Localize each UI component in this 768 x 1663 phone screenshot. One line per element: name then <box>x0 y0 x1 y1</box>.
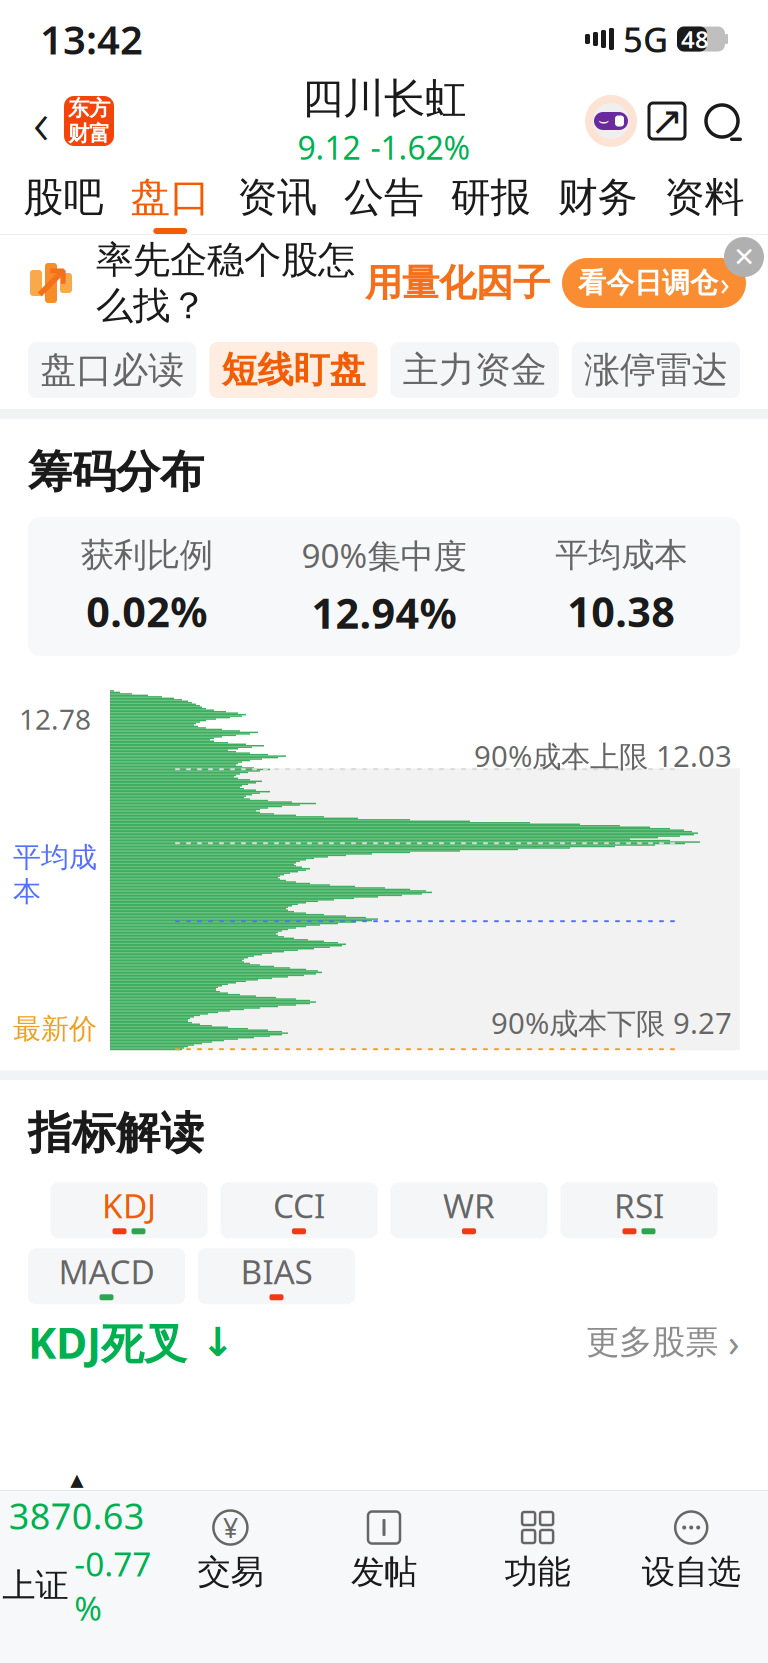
staticText: 获利比例 <box>81 535 213 576</box>
staticText: 更多股票 <box>586 1322 718 1363</box>
staticText: 交易 <box>197 1551 263 1592</box>
staticText: 12.78 <box>19 700 91 737</box>
staticText: CCI <box>273 1183 325 1227</box>
staticText: 10.38 <box>567 584 675 638</box>
staticText: -1.62% <box>370 126 470 169</box>
staticText: ↗ <box>31 256 71 310</box>
staticText: 用量化因子 <box>365 260 550 306</box>
button[interactable]: 资讯 <box>224 164 331 234</box>
staticText: 最新价 <box>13 1012 97 1046</box>
staticText: 研报 <box>451 173 531 222</box>
staticText: 股吧 <box>23 173 103 222</box>
staticText: 90%成本上限 12.03 <box>474 736 732 775</box>
staticText: 财务 <box>558 173 638 222</box>
staticText: ↗ <box>650 98 684 144</box>
button[interactable]: AI 助手 <box>582 92 640 150</box>
button[interactable]: BIAS <box>198 1248 355 1304</box>
staticText: 3870.63 <box>9 1492 145 1539</box>
staticText: 9.12 <box>297 126 360 169</box>
staticText: 指标解读 <box>28 1106 204 1160</box>
button[interactable]: 东方财富首页 <box>64 96 114 146</box>
staticText: 资料 <box>665 173 745 222</box>
staticText: 5G <box>614 16 677 62</box>
button[interactable]: KDJ <box>50 1182 207 1238</box>
staticText: 90%集中度 <box>301 533 466 577</box>
button[interactable]: 盘口 <box>117 164 224 234</box>
staticText: -0.77% <box>74 1541 151 1630</box>
staticText: ▲ <box>70 1470 83 1490</box>
staticText: RSI <box>614 1183 664 1227</box>
staticText: 90%成本下限 9.27 <box>491 1003 732 1042</box>
button[interactable]: ¥ <box>154 1507 307 1592</box>
staticText: 公告 <box>344 173 424 222</box>
staticText: 设自选 <box>642 1551 741 1592</box>
staticText: › <box>720 262 730 304</box>
button[interactable]: CCI <box>220 1182 377 1238</box>
button[interactable]: 股吧 <box>10 164 117 234</box>
button[interactable]: 搜索 <box>694 93 750 149</box>
staticText: WR <box>443 1183 495 1227</box>
button[interactable]: 短线盯盘 <box>209 342 377 398</box>
staticText: 发帖 <box>351 1551 417 1592</box>
staticText: ‹ <box>33 80 49 162</box>
staticText: 资讯 <box>237 173 317 222</box>
staticText: 0.02% <box>86 584 207 638</box>
button[interactable]: ▲ <box>0 1470 154 1630</box>
button[interactable]: 财务 <box>544 164 651 234</box>
staticText: KDJ <box>102 1183 156 1227</box>
staticText: ✕ <box>733 242 755 272</box>
staticText: 上证 <box>2 1565 68 1606</box>
button[interactable]: RSI <box>560 1182 717 1238</box>
button[interactable]: KDJ死叉 <box>0 1304 768 1380</box>
staticText: ↓ <box>187 1319 235 1365</box>
staticText: 筹码分布 <box>28 445 204 499</box>
button[interactable]: MACD <box>28 1248 185 1304</box>
staticText: ⌣ <box>598 112 609 129</box>
staticText: MACD <box>58 1249 154 1293</box>
staticText: KDJ死叉 <box>28 1314 187 1371</box>
staticText: 涨停雷达 <box>584 348 728 392</box>
staticText: 率先企稳个股怎么找？ <box>96 237 355 329</box>
button[interactable]: 主力资金 <box>390 342 559 398</box>
staticText: 12.94% <box>311 585 456 640</box>
button[interactable]: 公告 <box>331 164 437 234</box>
button[interactable]: 资料 <box>651 164 758 234</box>
button[interactable]: 看今日调仓 <box>562 258 746 308</box>
button[interactable]: 涨停雷达 <box>572 342 740 398</box>
staticText: 平均成本 <box>555 535 687 576</box>
staticText: 48 <box>681 23 709 55</box>
staticText: 13:42 <box>40 12 143 65</box>
button[interactable]: 功能 <box>461 1507 614 1592</box>
button[interactable]: 返回 <box>18 93 64 149</box>
button[interactable]: 设自选 <box>614 1507 768 1592</box>
button[interactable]: 分享 <box>640 94 694 148</box>
button[interactable]: 关闭广告 <box>722 235 766 279</box>
staticText: ¥ <box>223 1510 238 1545</box>
staticText: › <box>718 1317 740 1367</box>
staticText: 功能 <box>505 1551 571 1592</box>
button[interactable]: 研报 <box>437 164 544 234</box>
staticText: 盘口必读 <box>40 348 184 392</box>
staticText: 主力资金 <box>403 348 547 392</box>
button[interactable]: 发帖 <box>307 1507 461 1592</box>
staticText: 短线盯盘 <box>221 348 365 392</box>
staticText: 财富 <box>68 120 110 147</box>
staticText: 平均成本 <box>13 840 97 909</box>
button[interactable]: 盘口必读 <box>28 342 196 398</box>
staticText: 四川长虹 <box>302 73 466 124</box>
staticText: 看今日调仓 <box>578 266 718 300</box>
staticText: BIAS <box>240 1249 312 1293</box>
button[interactable]: WR <box>390 1182 547 1238</box>
staticText: 盘口 <box>130 173 210 222</box>
staticText: 东方 <box>68 95 110 121</box>
